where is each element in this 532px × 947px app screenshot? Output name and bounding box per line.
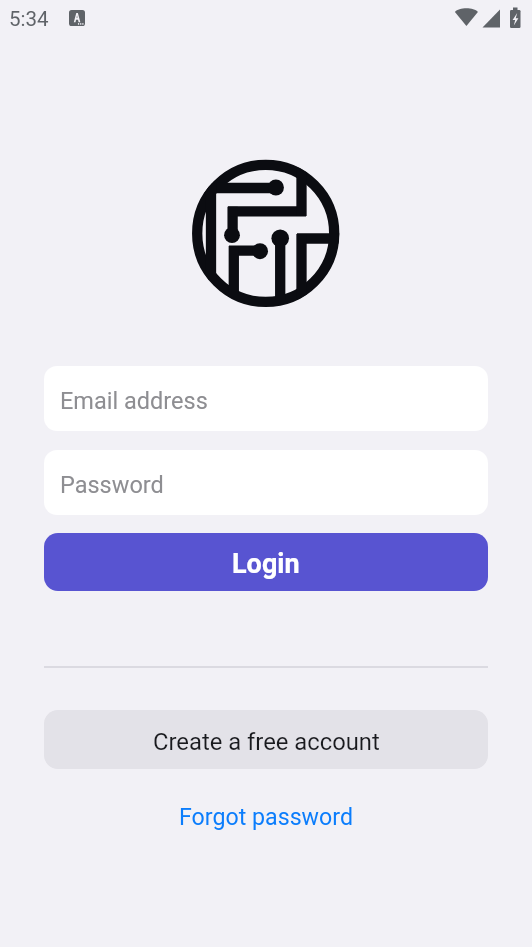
button[interactable]: Email address	[44, 366, 488, 431]
staticText: Password	[60, 471, 164, 499]
button[interactable]: Forgot password	[44, 793, 488, 837]
staticText: Create a free account	[153, 728, 380, 756]
staticText: 5:34	[9, 7, 49, 31]
other: Keyboard layout	[69, 10, 85, 26]
staticText: Login	[232, 548, 300, 580]
button[interactable]: Create a free account	[44, 710, 488, 769]
button[interactable]: Login	[44, 533, 488, 591]
other: Status icons	[452, 5, 524, 31]
staticText: Email address	[60, 387, 208, 415]
button[interactable]: Password	[44, 450, 488, 515]
other: App logo	[192, 158, 342, 308]
staticText: Forgot password	[179, 803, 353, 830]
